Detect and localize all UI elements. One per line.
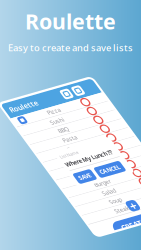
button[interactable]: Share list xyxy=(55,107,64,116)
button[interactable]: Pasta xyxy=(0,146,90,154)
button[interactable]: Curry xyxy=(0,172,90,181)
button[interactable]: Sushi xyxy=(0,128,90,137)
staticText: Easy to create and save lists xyxy=(8,41,133,54)
staticText: Tacos xyxy=(28,164,43,171)
button[interactable]: Soup xyxy=(0,207,90,216)
button[interactable]: BBQ xyxy=(0,137,90,145)
staticText: Pasta xyxy=(28,146,42,153)
staticText: Pizza xyxy=(32,120,45,127)
button[interactable]: Pizza xyxy=(0,119,90,128)
button[interactable]: Burger xyxy=(0,190,90,199)
button[interactable]: CREATE xyxy=(17,229,55,243)
button[interactable]: Tacos xyxy=(0,163,90,172)
staticText: BBQ xyxy=(30,137,40,144)
staticText: Where My Lunch ?? xyxy=(16,167,62,174)
button[interactable]: Steak xyxy=(0,216,90,225)
button[interactable]: CANCEL xyxy=(37,179,63,190)
staticText: Sushi xyxy=(29,128,42,136)
button[interactable]: New list xyxy=(67,107,76,116)
staticText: Ramen xyxy=(27,155,44,162)
staticText: Roulette xyxy=(25,7,116,35)
button[interactable]: SAVE xyxy=(16,179,34,190)
staticText: CREATE xyxy=(24,231,48,240)
staticText: Roulette xyxy=(3,108,31,116)
staticText: List Name xyxy=(16,160,34,165)
button[interactable]: Thai xyxy=(0,181,90,190)
staticText: CANCEL xyxy=(40,181,60,188)
button[interactable]: Salad xyxy=(0,199,90,207)
button[interactable]: Ramen xyxy=(0,154,90,163)
